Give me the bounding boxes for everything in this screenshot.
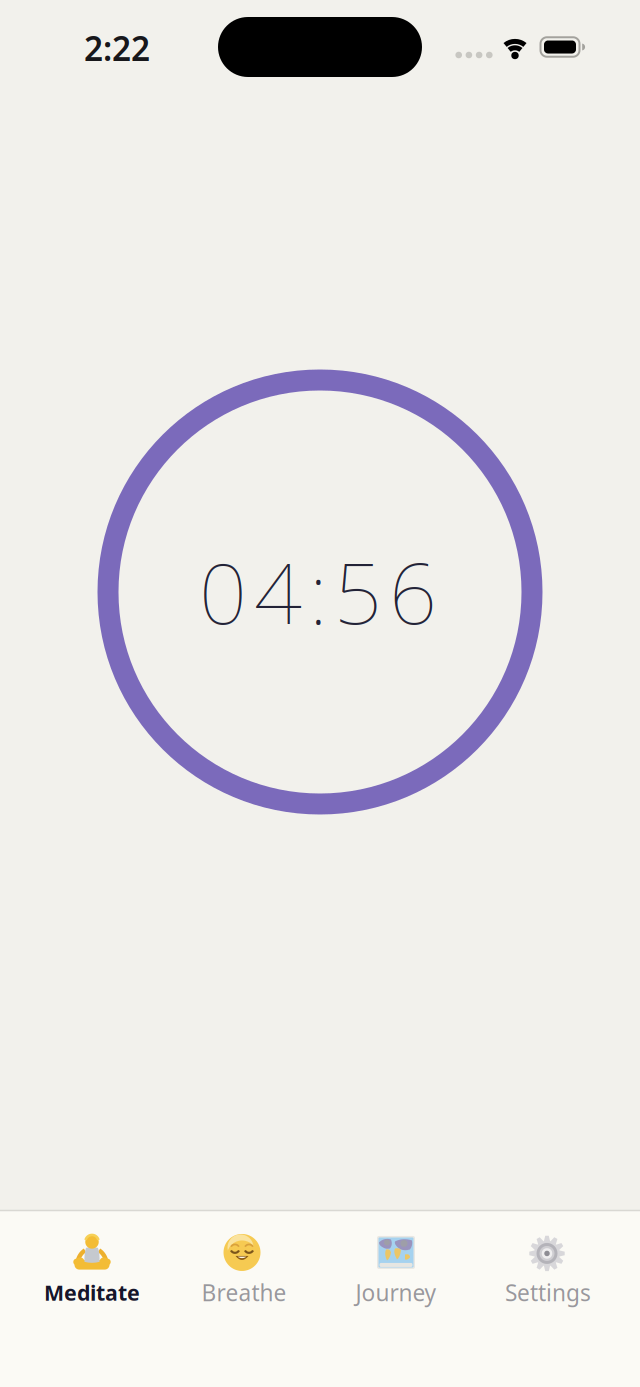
- button[interactable]: Settings: [472, 1227, 624, 1313]
- staticText: 2:22: [84, 26, 150, 70]
- staticText: Journey: [355, 1277, 436, 1307]
- staticText: Breathe: [201, 1277, 286, 1307]
- button[interactable]: Meditate: [16, 1227, 168, 1313]
- staticText: Settings: [505, 1277, 591, 1307]
- button[interactable]: Breathe: [168, 1227, 320, 1313]
- button[interactable]: Journey: [320, 1227, 472, 1313]
- staticText: 04:56: [199, 536, 437, 647]
- staticText: Meditate: [44, 1278, 140, 1307]
